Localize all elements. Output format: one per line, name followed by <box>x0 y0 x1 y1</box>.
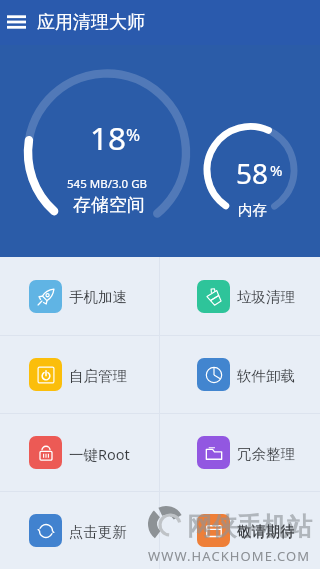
button[interactable]: 自启管理 <box>0 336 159 413</box>
staticText: 一键Root <box>69 444 130 464</box>
staticText: 内存 <box>238 201 267 219</box>
button[interactable]: 一键Root <box>0 414 159 491</box>
staticText: 应用清理大师 <box>37 11 145 34</box>
button[interactable]: 软件卸载 <box>160 336 320 413</box>
staticText: 冗余整理 <box>237 445 295 463</box>
staticText: 网侠手机站 <box>187 511 312 542</box>
staticText: 18 <box>90 116 127 159</box>
staticText: 敬请期待 <box>237 523 295 541</box>
button[interactable]: Open navigation menu <box>7 16 26 30</box>
staticText: 软件卸载 <box>237 367 295 385</box>
staticText: 58 <box>236 154 269 192</box>
button[interactable]: 敬请期待 <box>160 492 320 569</box>
staticText: 垃圾清理 <box>237 288 295 306</box>
staticText: 点击更新 <box>69 523 127 541</box>
button[interactable]: 点击更新 <box>0 492 159 569</box>
staticText: % <box>270 160 283 180</box>
staticText: % <box>126 123 141 146</box>
staticText: 手机加速 <box>69 288 127 306</box>
staticText: 存储空间 <box>73 194 145 217</box>
button[interactable]: 冗余整理 <box>160 414 320 491</box>
button[interactable]: 垃圾清理 <box>160 257 320 335</box>
button[interactable]: Open navigation menu <box>0 0 320 45</box>
staticText: WWW.HACKHOME.COM <box>148 547 311 565</box>
button[interactable]: 手机加速 <box>0 257 159 335</box>
staticText: 545 MB/3.0 GB <box>67 176 147 192</box>
staticText: 自启管理 <box>69 367 127 385</box>
staticText: 敬请期待 <box>237 522 295 540</box>
